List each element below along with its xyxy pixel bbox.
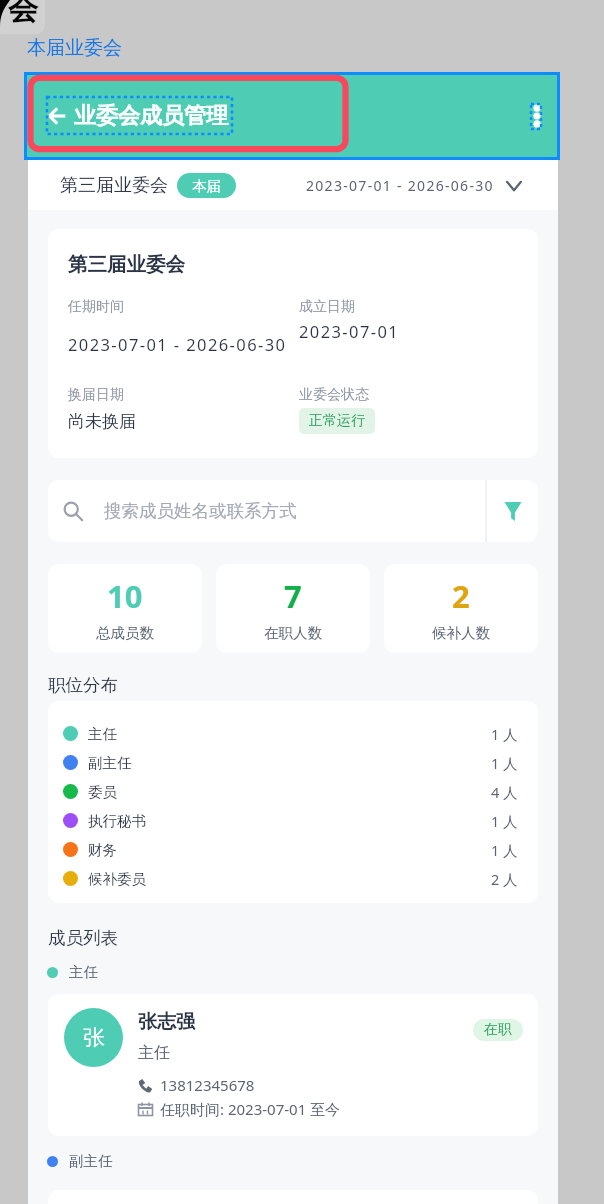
button[interactable]: 委员 — [63, 777, 518, 806]
staticText: 业委会状态 — [299, 386, 369, 404]
button[interactable]: More options — [522, 101, 552, 131]
staticText: 2023-07-01 - 2026-06-30 — [68, 333, 287, 355]
staticText: 本届 — [192, 177, 221, 195]
staticText: 会 — [8, 0, 38, 28]
staticText: 正常运行 — [309, 412, 365, 430]
button[interactable]: 副主任 — [47, 1152, 113, 1170]
staticText: 1 人 — [491, 724, 518, 744]
staticText: 搜索成员姓名或联系方式 — [104, 500, 297, 522]
staticText: 2 人 — [491, 869, 518, 889]
staticText: 主任 — [88, 725, 117, 743]
staticText: 2023-07-01 - 2026-06-30 — [306, 176, 494, 195]
staticText: 张 — [83, 1024, 105, 1052]
staticText: 本届业委会 — [27, 36, 122, 60]
button[interactable]: 2 — [384, 564, 538, 653]
button[interactable]: 主任 — [63, 719, 518, 748]
staticText: 主任 — [138, 1043, 170, 1063]
button[interactable]: 搜索成员姓名或联系方式 — [48, 480, 538, 542]
button[interactable]: 副主任 — [63, 748, 518, 777]
staticText: 副主任 — [69, 1152, 113, 1170]
staticText: 13812345678 — [160, 1075, 255, 1095]
staticText: 候补委员 — [88, 870, 146, 888]
staticText: 2023-07-01 — [299, 320, 400, 342]
staticText: 成员列表 — [48, 927, 118, 949]
button[interactable]: 执行秘书 — [63, 806, 518, 835]
staticText: 财务 — [88, 841, 117, 859]
button[interactable]: 候补委员 — [63, 864, 518, 893]
button[interactable]: Filter — [487, 480, 538, 542]
staticText: 成立日期 — [299, 298, 355, 316]
staticText: 换届日期 — [68, 386, 124, 404]
staticText: 4 人 — [491, 782, 518, 802]
staticText: 在职 — [484, 1021, 512, 1039]
staticText: 10 — [107, 575, 143, 617]
staticText: 在职人数 — [264, 624, 322, 642]
staticText: 张志强 — [138, 1010, 195, 1034]
staticText: 委员 — [88, 783, 117, 801]
button[interactable]: 10 — [48, 564, 202, 653]
staticText: 执行秘书 — [88, 812, 146, 830]
staticText: 副主任 — [88, 754, 132, 772]
staticText: 主任 — [69, 963, 98, 981]
staticText: 第三届业委会 — [68, 252, 185, 277]
button[interactable]: 张 — [48, 994, 538, 1136]
staticText: 7 — [284, 575, 302, 617]
button[interactable]: 业委会成员管理 — [44, 98, 232, 134]
staticText: 1 人 — [491, 811, 518, 831]
staticText: 任职时间: 2023-07-01 至今 — [160, 1099, 341, 1119]
staticText: 2 — [452, 575, 470, 617]
staticText: 候补人数 — [432, 624, 490, 642]
button[interactable]: 财务 — [63, 835, 518, 864]
button[interactable]: 第三届业委会 — [28, 160, 558, 210]
staticText: 总成员数 — [96, 624, 154, 642]
staticText: 1 人 — [491, 753, 518, 773]
button[interactable]: 7 — [216, 564, 370, 653]
staticText: 职位分布 — [48, 674, 118, 696]
staticText: 1 人 — [491, 840, 518, 860]
staticText: 任期时间 — [68, 298, 124, 316]
staticText: 业委会成员管理 — [74, 102, 228, 130]
button[interactable]: 主任 — [47, 963, 98, 981]
staticText: 尚未换届 — [68, 411, 136, 432]
staticText: 第三届业委会 — [60, 174, 168, 197]
